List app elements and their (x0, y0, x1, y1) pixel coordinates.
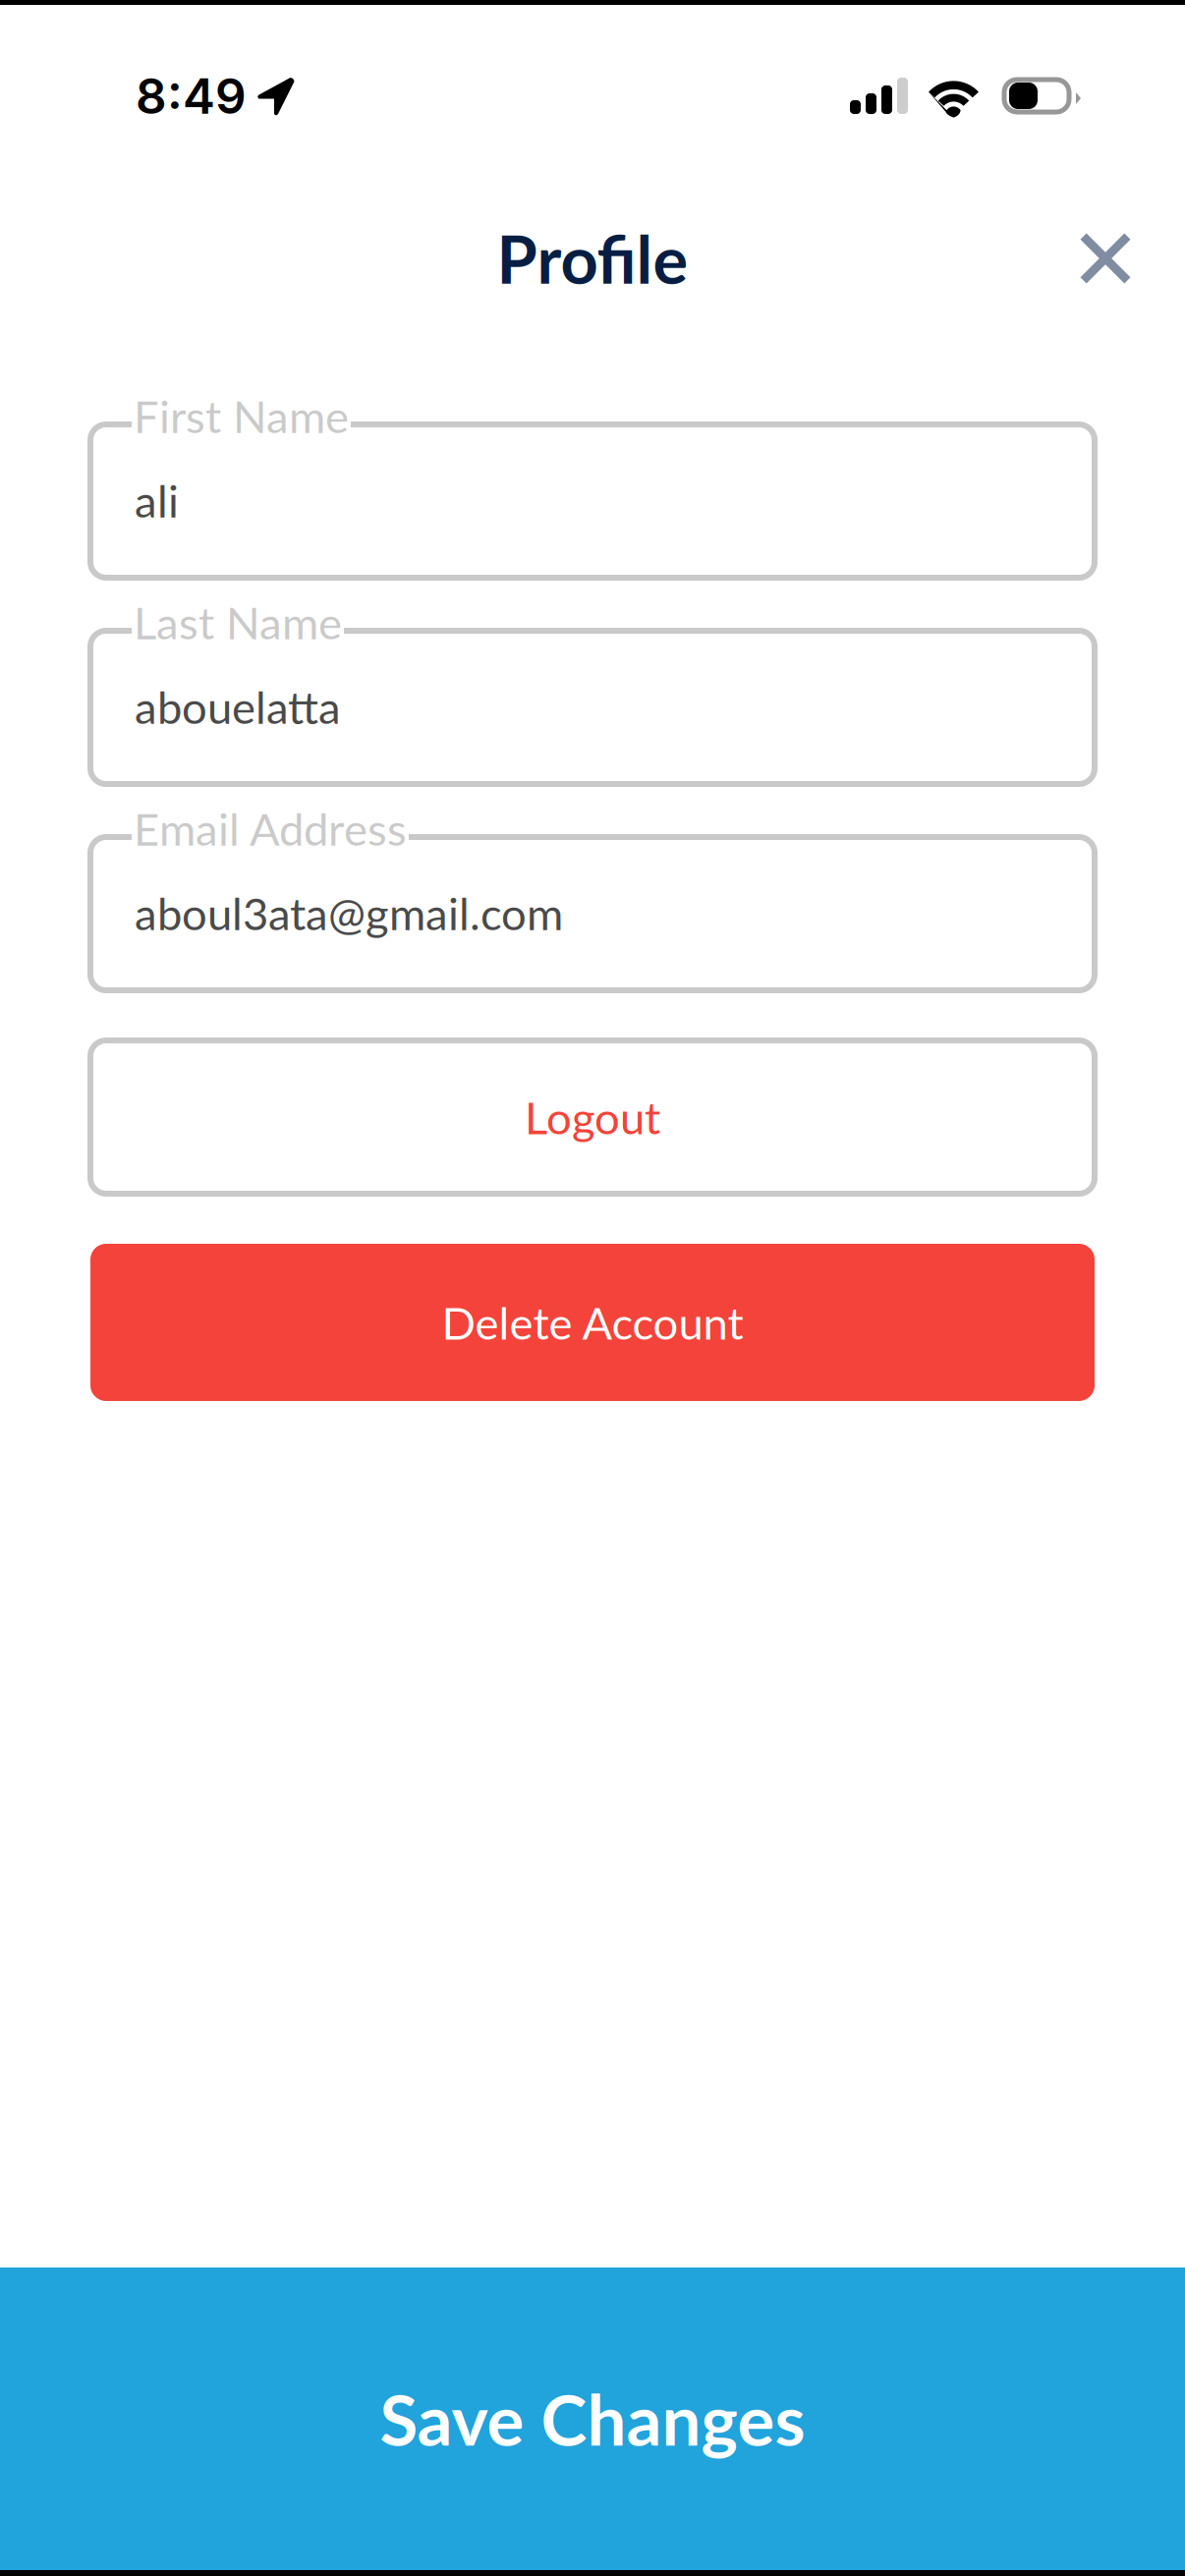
staticText: Delete Account (442, 1296, 743, 1349)
button[interactable]: Close (1041, 196, 1170, 320)
staticText: Profile (497, 219, 688, 298)
staticText: Save Changes (380, 2377, 805, 2460)
button[interactable]: Save Changes (0, 2268, 1185, 2570)
staticText: Logout (525, 1090, 660, 1144)
staticText: First Name (134, 389, 349, 442)
button[interactable]: Delete Account (90, 1244, 1095, 1401)
staticText: aboul3ata@gmail.com (135, 886, 563, 940)
staticText: 8:49 (136, 67, 247, 125)
staticText: ali (135, 474, 179, 527)
button[interactable]: Logout (90, 1040, 1095, 1194)
staticText: Last Name (134, 595, 342, 649)
staticText: abouelatta (135, 680, 341, 733)
staticText: Email Address (134, 802, 407, 855)
